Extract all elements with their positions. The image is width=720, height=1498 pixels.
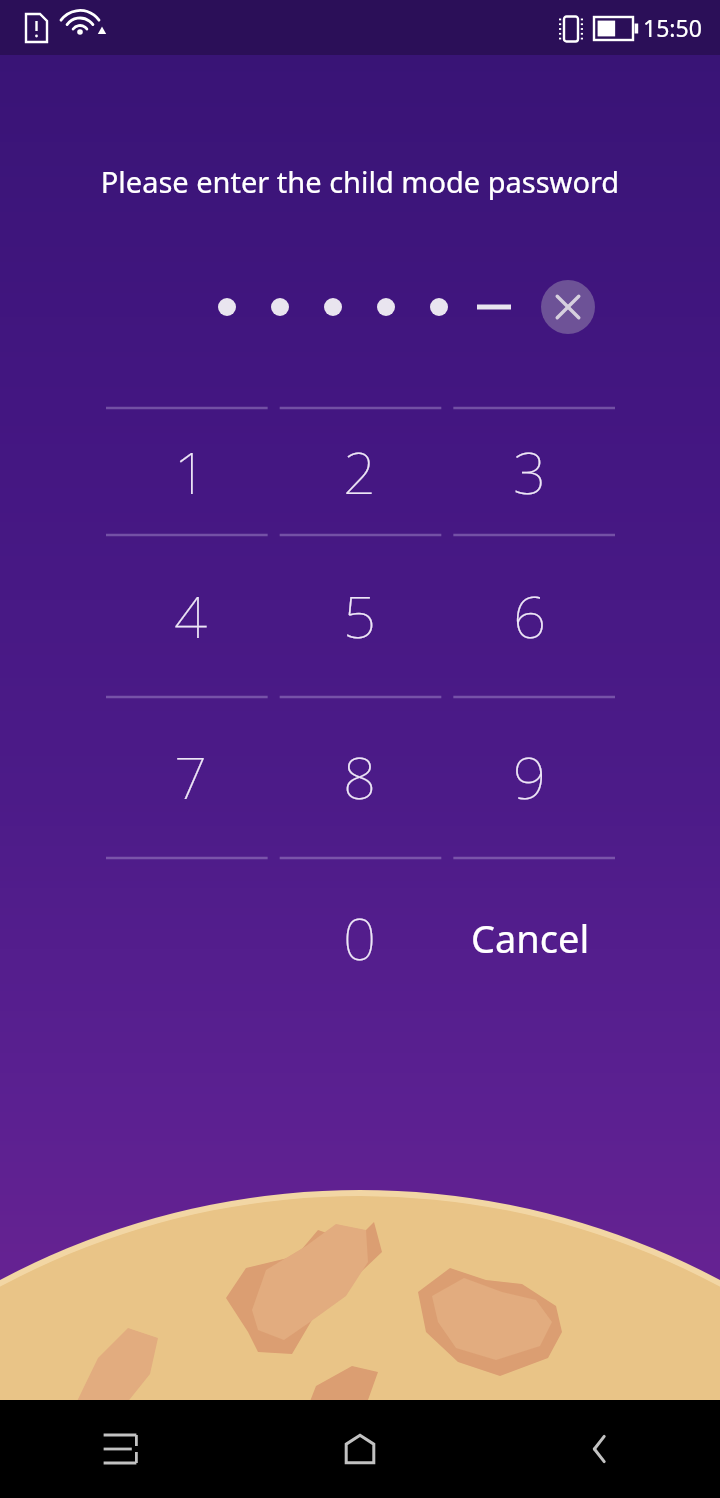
button[interactable]: 9 bbox=[445, 696, 615, 857]
staticText: 8 bbox=[343, 737, 377, 816]
staticText: 6 bbox=[513, 576, 547, 655]
staticText: 7 bbox=[174, 737, 208, 816]
staticText: 5 bbox=[343, 576, 377, 655]
staticText: 15:50 bbox=[643, 12, 702, 43]
button[interactable]: 0 bbox=[275, 857, 445, 1018]
button[interactable]: 6 bbox=[445, 535, 615, 696]
button[interactable]: 8 bbox=[275, 696, 445, 857]
button[interactable]: 1 bbox=[106, 408, 275, 535]
staticText: 4 bbox=[174, 576, 208, 655]
staticText: 9 bbox=[513, 737, 547, 816]
staticText: 3 bbox=[513, 432, 547, 511]
button[interactable]: 4 bbox=[106, 535, 275, 696]
button[interactable]: Recents bbox=[0, 1400, 240, 1498]
button[interactable]: Back bbox=[480, 1400, 720, 1498]
button[interactable]: Home bbox=[240, 1400, 480, 1498]
button[interactable]: 2 bbox=[275, 408, 445, 535]
button[interactable]: Cancel bbox=[445, 857, 615, 1018]
staticText: 1 bbox=[174, 432, 208, 511]
button[interactable]: 5 bbox=[275, 535, 445, 696]
staticText: 0 bbox=[343, 898, 377, 977]
button[interactable]: Delete bbox=[541, 280, 595, 334]
staticText: 2 bbox=[343, 432, 377, 511]
staticText: Cancel bbox=[471, 912, 590, 964]
button[interactable]: 7 bbox=[106, 696, 275, 857]
staticText: Please enter the child mode password bbox=[12, 162, 708, 201]
button[interactable]: 3 bbox=[445, 408, 615, 535]
